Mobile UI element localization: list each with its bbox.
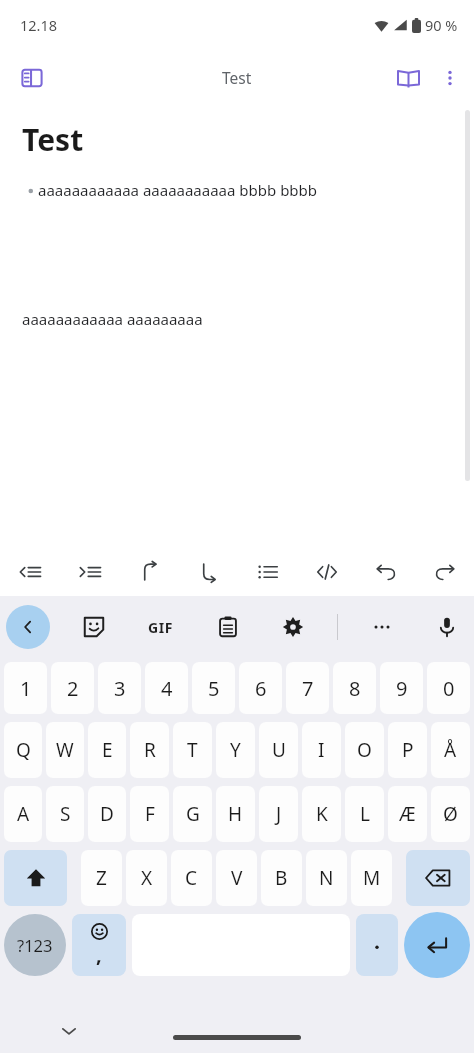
button[interactable]: Move down — [179, 548, 238, 596]
staticText: K — [316, 801, 328, 827]
staticText: 12.18 — [20, 15, 58, 35]
button[interactable]: Keyboard settings — [272, 606, 314, 648]
staticText: G — [186, 801, 200, 827]
staticText: P — [402, 737, 414, 763]
button[interactable]: ?123 — [4, 914, 66, 976]
button[interactable]: Z — [81, 850, 122, 906]
staticText: Test — [222, 67, 252, 88]
button[interactable]: More — [361, 606, 403, 648]
staticText: N — [319, 865, 334, 891]
staticText: 3 — [114, 675, 126, 702]
button[interactable]: V — [216, 850, 257, 906]
staticText: C — [185, 865, 198, 891]
staticText: 7 — [302, 675, 314, 702]
button[interactable]: 6 — [239, 662, 282, 714]
button[interactable]: Code — [297, 548, 356, 596]
button[interactable]: Outdent — [0, 548, 60, 596]
button[interactable]: Æ — [388, 786, 427, 842]
button[interactable]: 3 — [98, 662, 141, 714]
button[interactable]: 7 — [286, 662, 329, 714]
button[interactable]: Ø — [431, 786, 470, 842]
button[interactable]: Undo — [356, 548, 415, 596]
staticText: O — [357, 737, 372, 763]
staticText: L — [360, 801, 370, 827]
button[interactable]: 0 — [427, 662, 470, 714]
staticText: B — [275, 865, 288, 891]
button[interactable]: R — [130, 722, 169, 778]
staticText: Test — [22, 119, 84, 160]
button[interactable]: X — [126, 850, 167, 906]
button[interactable]: More options — [430, 58, 470, 98]
button[interactable]: Read mode — [386, 56, 430, 100]
button[interactable]: K — [302, 786, 341, 842]
staticText: F — [145, 801, 155, 827]
staticText: aaaaaaaaaaaa aaaaaaaaa — [22, 309, 203, 329]
button[interactable]: Indent — [60, 548, 120, 596]
button[interactable]: Back — [6, 605, 50, 649]
button[interactable]: 4 — [145, 662, 188, 714]
staticText: Ø — [443, 801, 458, 827]
button[interactable]: O — [345, 722, 384, 778]
staticText: A — [17, 801, 30, 827]
staticText: Q — [16, 737, 31, 763]
staticText: , — [96, 941, 102, 968]
button[interactable]: H — [216, 786, 255, 842]
button[interactable]: G — [173, 786, 212, 842]
button[interactable]: B — [261, 850, 302, 906]
button[interactable]: 8 — [333, 662, 376, 714]
button[interactable]: Å — [431, 722, 470, 778]
button[interactable]: Bullet list — [238, 548, 297, 596]
staticText: GIF — [148, 618, 174, 637]
button[interactable]: P — [388, 722, 427, 778]
button[interactable]: J — [259, 786, 298, 842]
staticText: 8 — [349, 675, 361, 702]
button[interactable]: Toggle sidebar — [10, 56, 54, 100]
button[interactable]: N — [306, 850, 347, 906]
button[interactable]: Stickers — [73, 606, 115, 648]
button[interactable]: Move up — [120, 548, 179, 596]
button[interactable]: Shift — [4, 850, 67, 906]
button[interactable]: Voice input — [426, 606, 468, 648]
staticText: Y — [230, 737, 241, 763]
button[interactable]: E — [88, 722, 126, 778]
staticText: U — [272, 737, 286, 763]
button[interactable]: Q — [4, 722, 42, 778]
button[interactable]: T — [173, 722, 212, 778]
staticText: 9 — [396, 675, 408, 702]
button[interactable]: L — [345, 786, 384, 842]
button[interactable]: GIF — [138, 604, 184, 650]
button[interactable]: Y — [216, 722, 255, 778]
button[interactable]: 1 — [4, 662, 47, 714]
button[interactable]: M — [351, 850, 392, 906]
button[interactable]: 2 — [51, 662, 94, 714]
staticText: E — [102, 737, 113, 763]
staticText: M — [363, 865, 381, 891]
staticText: 6 — [255, 675, 267, 702]
button[interactable]: D — [88, 786, 126, 842]
staticText: 4 — [161, 675, 173, 702]
button[interactable] — [356, 914, 398, 976]
button[interactable]: Enter — [404, 912, 470, 978]
button[interactable]: Clipboard — [207, 606, 249, 648]
button[interactable]: F — [130, 786, 169, 842]
staticText: D — [100, 801, 114, 827]
staticText: J — [276, 801, 282, 827]
button[interactable]: 9 — [380, 662, 423, 714]
button[interactable]: Redo — [415, 548, 474, 596]
button[interactable]: A — [4, 786, 42, 842]
staticText: R — [144, 737, 156, 763]
button[interactable]: 5 — [192, 662, 235, 714]
staticText: X — [141, 865, 153, 891]
button[interactable]: Emoji and comma — [72, 914, 126, 976]
button[interactable]: Backspace — [406, 850, 470, 906]
button[interactable]: U — [259, 722, 298, 778]
button[interactable]: Hide keyboard — [48, 1010, 90, 1052]
button[interactable]: C — [171, 850, 212, 906]
button[interactable]: S — [46, 786, 84, 842]
staticText: H — [228, 801, 243, 827]
button[interactable]: I — [302, 722, 341, 778]
staticText: Å — [444, 737, 457, 763]
staticText: 0 — [443, 675, 455, 702]
button[interactable]: W — [46, 722, 84, 778]
